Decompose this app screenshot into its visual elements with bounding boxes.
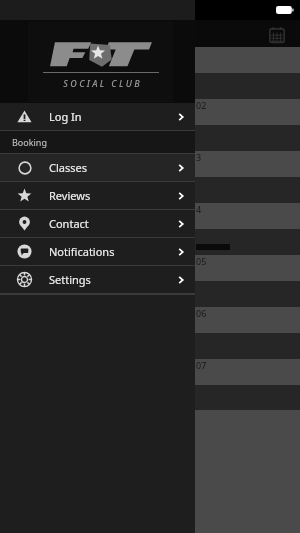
button[interactable]: Reviews	[0, 182, 195, 209]
staticText: Notifications	[49, 244, 115, 259]
button[interactable]: Notifications	[0, 238, 195, 265]
button[interactable]: Contact	[0, 210, 195, 237]
staticText: 4	[196, 203, 202, 215]
staticText: Contact	[49, 216, 89, 231]
staticText: 06	[196, 307, 207, 319]
staticText: Log In	[49, 109, 82, 124]
staticText: S O C I A L C L U B	[63, 77, 140, 89]
staticText: 02	[196, 99, 207, 111]
staticText: 07	[196, 359, 207, 371]
staticText: Settings	[49, 272, 91, 287]
staticText: 3	[196, 151, 202, 163]
staticText: Reviews	[49, 188, 91, 203]
staticText: 05	[196, 255, 207, 267]
button[interactable]: Log In	[0, 103, 195, 130]
button[interactable]: Classes	[0, 154, 195, 181]
staticText: Classes	[49, 160, 87, 175]
button[interactable]: Settings	[0, 266, 195, 293]
button[interactable]: Calendar	[264, 22, 290, 48]
staticText: Booking	[12, 136, 47, 148]
